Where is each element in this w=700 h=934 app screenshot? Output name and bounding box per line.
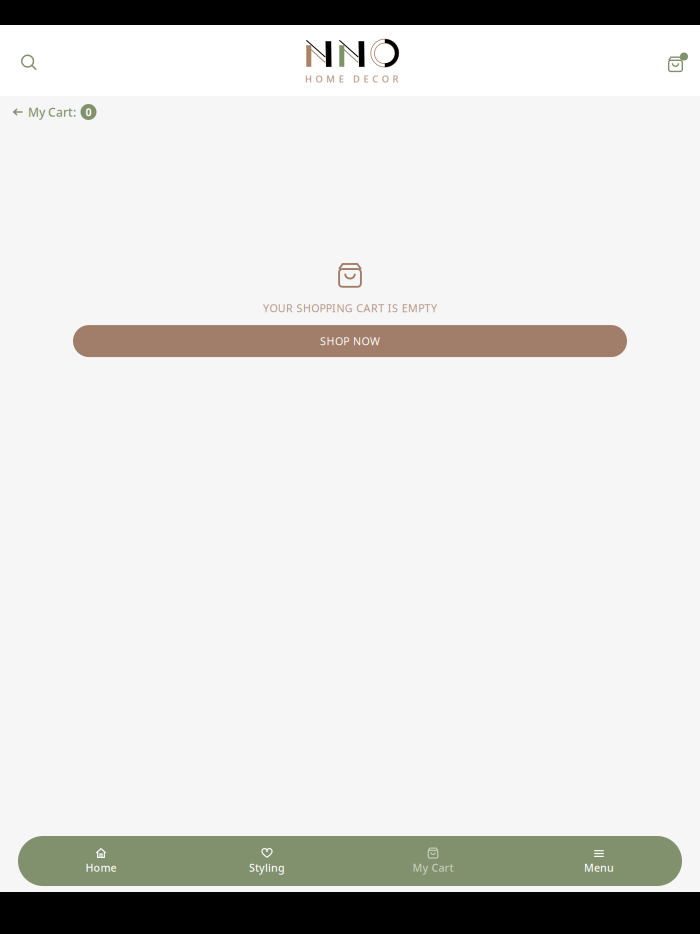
staticText: My Cart: <box>28 104 76 120</box>
staticText: Styling <box>249 860 285 875</box>
staticText: H O M E D E C O R <box>305 73 398 85</box>
button[interactable]: My Cart: <box>0 100 96 124</box>
button[interactable]: Menu <box>516 835 682 887</box>
button[interactable]: SHOP NOW <box>73 325 627 357</box>
button[interactable]: Search <box>0 40 49 80</box>
button[interactable]: Styling <box>184 835 350 887</box>
staticText: YOUR SHOPPING CART IS EMPTY <box>263 301 437 315</box>
staticText: Home <box>85 860 116 875</box>
staticText: Menu <box>584 860 614 875</box>
button[interactable]: Cart <box>654 39 700 81</box>
staticText: 0 <box>85 105 91 119</box>
staticText: SHOP NOW <box>320 334 380 348</box>
button[interactable]: Home <box>18 835 184 887</box>
button[interactable]: My Cart <box>350 835 516 887</box>
staticText: My Cart <box>412 860 453 875</box>
